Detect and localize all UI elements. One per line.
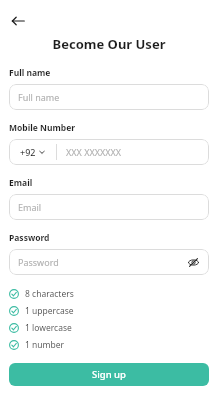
button[interactable]: Select country code: [9, 139, 56, 165]
staticText: XXX XXXXXXX: [66, 146, 122, 158]
staticText: 1 lowercase: [25, 322, 72, 334]
staticText: Email: [18, 201, 42, 213]
staticText: Password: [9, 232, 50, 244]
staticText: +92: [20, 146, 36, 158]
staticText: 8 characters: [25, 288, 74, 300]
button[interactable]: Full name: [9, 84, 209, 110]
staticText: Full name: [18, 91, 60, 103]
staticText: Password: [18, 256, 186, 268]
staticText: 1 number: [25, 339, 65, 351]
button[interactable]: Sign up: [9, 363, 209, 386]
staticText: Mobile Number: [9, 122, 76, 134]
staticText: Full name: [9, 67, 51, 79]
staticText: Become Our User: [0, 35, 218, 53]
staticText: Email: [9, 177, 33, 189]
button[interactable]: Select country code: [9, 139, 209, 165]
staticText: 1 uppercase: [25, 305, 74, 317]
staticText: Sign up: [92, 368, 126, 381]
button[interactable]: Show password: [186, 255, 200, 269]
button[interactable]: Password: [9, 249, 209, 275]
button[interactable]: Email: [9, 194, 209, 220]
button[interactable]: Back: [5, 8, 31, 34]
